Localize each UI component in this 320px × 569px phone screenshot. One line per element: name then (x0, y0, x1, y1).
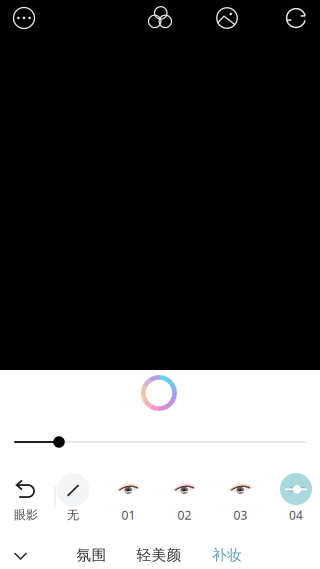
button[interactable]: Intensity (14, 432, 306, 452)
staticText: 轻美颜 (136, 546, 181, 564)
button[interactable]: 01 (103, 470, 153, 526)
button[interactable]: Collapse panel (0, 538, 41, 569)
button[interactable]: Flip camera (281, 3, 311, 33)
button[interactable]: More options (9, 3, 39, 33)
button[interactable]: 03 (215, 470, 265, 526)
button[interactable]: 04 (271, 470, 320, 526)
button[interactable]: Filters (145, 3, 175, 33)
staticText: 03 (233, 507, 247, 523)
staticText: 无 (67, 508, 79, 522)
button[interactable]: 02 (159, 470, 209, 526)
staticText: 01 (121, 507, 135, 523)
button[interactable]: 补妆 (200, 538, 254, 569)
staticText: 眼影 (14, 508, 38, 522)
staticText: 补妆 (212, 546, 242, 564)
button[interactable]: 眼影 (3, 471, 49, 525)
staticText: 04 (289, 507, 303, 523)
button[interactable]: 氛围 (64, 538, 118, 569)
button[interactable]: 无 (50, 471, 96, 525)
button[interactable]: Photo library (212, 3, 242, 33)
staticText: 氛围 (76, 546, 106, 564)
button[interactable]: 轻美颜 (128, 538, 190, 569)
staticText: 02 (177, 507, 191, 523)
